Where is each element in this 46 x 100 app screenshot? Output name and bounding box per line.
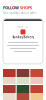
staticText: FOLLOW (3, 5, 19, 10)
button[interactable]: Photo (30, 85, 43, 100)
staticText: SHOPS (20, 5, 32, 10)
staticText: Get updates about sales (3, 11, 36, 15)
button[interactable]: Photo (30, 69, 43, 84)
button[interactable]: Photo (17, 85, 29, 100)
staticText: Sunday Bakery (12, 35, 33, 39)
button[interactable]: Photo (3, 85, 16, 100)
button[interactable]: Photo (17, 69, 29, 84)
button[interactable]: Photo (3, 69, 16, 84)
button[interactable]: NOV 12 (3, 19, 43, 64)
staticText: NOV 12 (17, 25, 28, 28)
